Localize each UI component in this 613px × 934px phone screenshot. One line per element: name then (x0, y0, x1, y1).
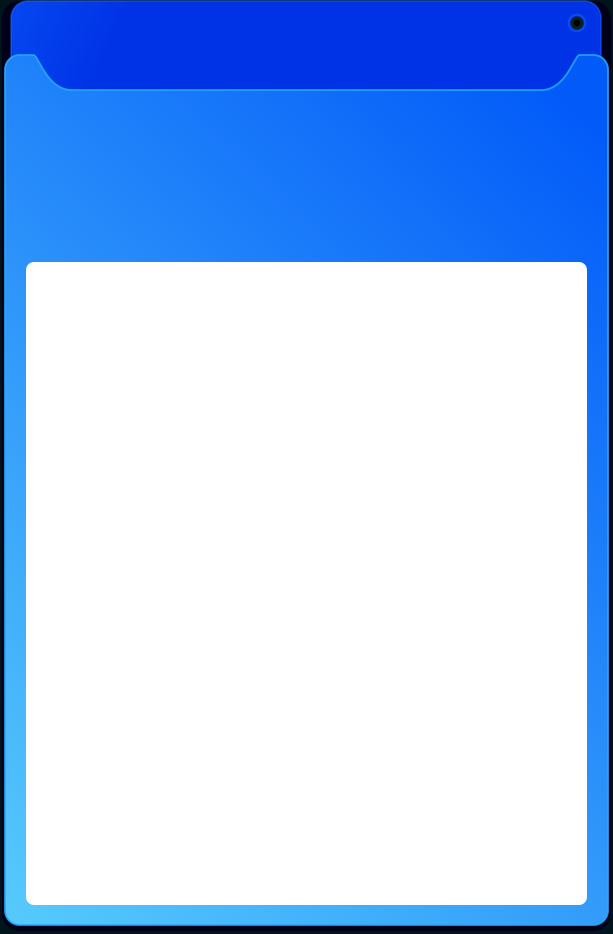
button[interactable]: Close (567, 13, 587, 33)
button[interactable]: Sheet header (11, 1, 601, 91)
